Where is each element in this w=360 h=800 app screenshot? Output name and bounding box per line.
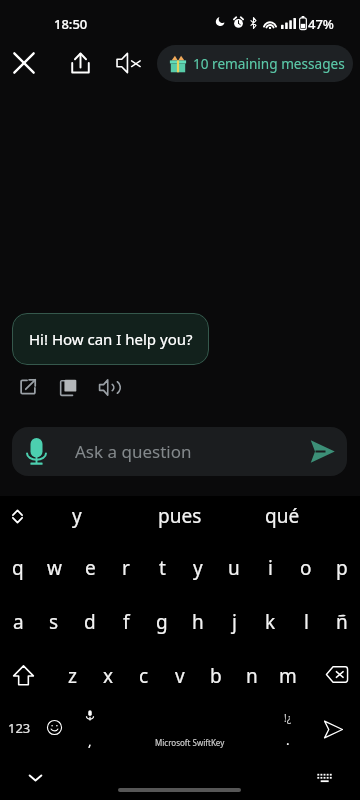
staticText: Ask a question	[75, 440, 312, 463]
button[interactable]: r	[108, 541, 144, 595]
button[interactable]: Voice input	[12, 427, 347, 476]
button[interactable]: Expand suggestions	[5, 504, 29, 528]
button[interactable]: qué	[231, 497, 334, 535]
staticText: h	[192, 609, 204, 635]
staticText: j	[232, 609, 237, 635]
staticText: y	[72, 503, 82, 529]
button[interactable]: Close	[5, 44, 43, 82]
button[interactable]: Backspace	[310, 649, 360, 703]
staticText: 18:50	[54, 15, 88, 33]
staticText: r	[122, 555, 130, 581]
button[interactable]: pues	[128, 497, 231, 535]
button[interactable]: Hide keyboard	[21, 764, 49, 792]
button[interactable]: 123	[0, 709, 38, 755]
button[interactable]: Punctuation	[272, 705, 304, 751]
button[interactable]: Shift	[0, 649, 54, 703]
staticText: y	[193, 555, 203, 581]
button[interactable]: e	[72, 541, 108, 595]
staticText: z	[68, 663, 77, 689]
staticText: m	[279, 663, 297, 689]
button[interactable]: m	[270, 649, 306, 703]
staticText: l	[304, 609, 309, 635]
staticText: 123	[8, 719, 31, 737]
button[interactable]: l	[288, 595, 324, 649]
button[interactable]: i	[252, 541, 288, 595]
staticText: .	[286, 731, 290, 749]
staticText: c	[139, 663, 149, 689]
staticText: v	[175, 663, 185, 689]
staticText: Hi! How can I help you?	[29, 329, 193, 349]
button[interactable]: k	[252, 595, 288, 649]
button[interactable]: w	[36, 541, 72, 595]
staticText: d	[84, 609, 96, 635]
staticText: qué	[265, 503, 300, 529]
staticText: ,	[88, 732, 92, 750]
staticText: w	[47, 555, 62, 581]
staticText: 47%	[308, 15, 334, 33]
staticText: n	[246, 663, 258, 689]
button[interactable]: Voice input	[12, 427, 61, 476]
button[interactable]: ñ	[324, 595, 360, 649]
button[interactable]: 10 remaining messages	[157, 45, 353, 82]
button[interactable]: Open in new window	[11, 370, 45, 404]
staticText: s	[49, 609, 59, 635]
button[interactable]: v	[162, 649, 198, 703]
staticText: a	[13, 609, 24, 635]
button[interactable]: Read aloud	[91, 370, 125, 404]
button[interactable]: Send message	[316, 712, 350, 746]
staticText: k	[265, 609, 276, 635]
button[interactable]: u	[216, 541, 252, 595]
button[interactable]: Switch keyboard	[309, 762, 340, 793]
button[interactable]: f	[108, 595, 144, 649]
staticText: u	[228, 555, 240, 581]
staticText: b	[210, 663, 222, 689]
button[interactable]: q	[0, 541, 36, 595]
button[interactable]: a	[0, 595, 36, 649]
staticText: q	[12, 555, 24, 581]
staticText: !¿	[284, 711, 292, 725]
staticText: e	[85, 555, 96, 581]
button[interactable]: y	[180, 541, 216, 595]
button[interactable]: n	[234, 649, 270, 703]
staticText: pues	[158, 503, 202, 529]
button[interactable]: o	[288, 541, 324, 595]
button[interactable]: Microsoft SwiftKey	[110, 709, 270, 755]
button[interactable]: Send	[298, 427, 347, 476]
button[interactable]: Mute notifications	[108, 44, 150, 82]
button[interactable]: p	[324, 541, 360, 595]
staticText: g	[156, 609, 168, 635]
staticText: 10 remaining messages	[193, 54, 345, 73]
staticText: p	[336, 555, 348, 581]
staticText: x	[103, 663, 114, 689]
button[interactable]: y	[26, 497, 128, 535]
button[interactable]: Hi! How can I help you?	[12, 313, 209, 365]
button[interactable]: Voice typing and comma	[74, 705, 106, 751]
button[interactable]: Emoji	[38, 711, 71, 744]
button[interactable]: b	[198, 649, 234, 703]
button[interactable]: Copy	[51, 370, 85, 404]
staticText: i	[268, 555, 273, 581]
button[interactable]: x	[90, 649, 126, 703]
button[interactable]: c	[126, 649, 162, 703]
button[interactable]: h	[180, 595, 216, 649]
button[interactable]: j	[216, 595, 252, 649]
button[interactable]: Share	[61, 44, 100, 82]
staticText: o	[300, 555, 312, 581]
button[interactable]: d	[72, 595, 108, 649]
button[interactable]: z	[54, 649, 90, 703]
staticText: f	[123, 609, 130, 635]
button[interactable]: g	[144, 595, 180, 649]
button[interactable]: t	[144, 541, 180, 595]
staticText: ñ	[336, 609, 348, 635]
staticText: Microsoft SwiftKey	[155, 737, 225, 748]
button[interactable]: s	[36, 595, 72, 649]
staticText: t	[159, 555, 166, 581]
